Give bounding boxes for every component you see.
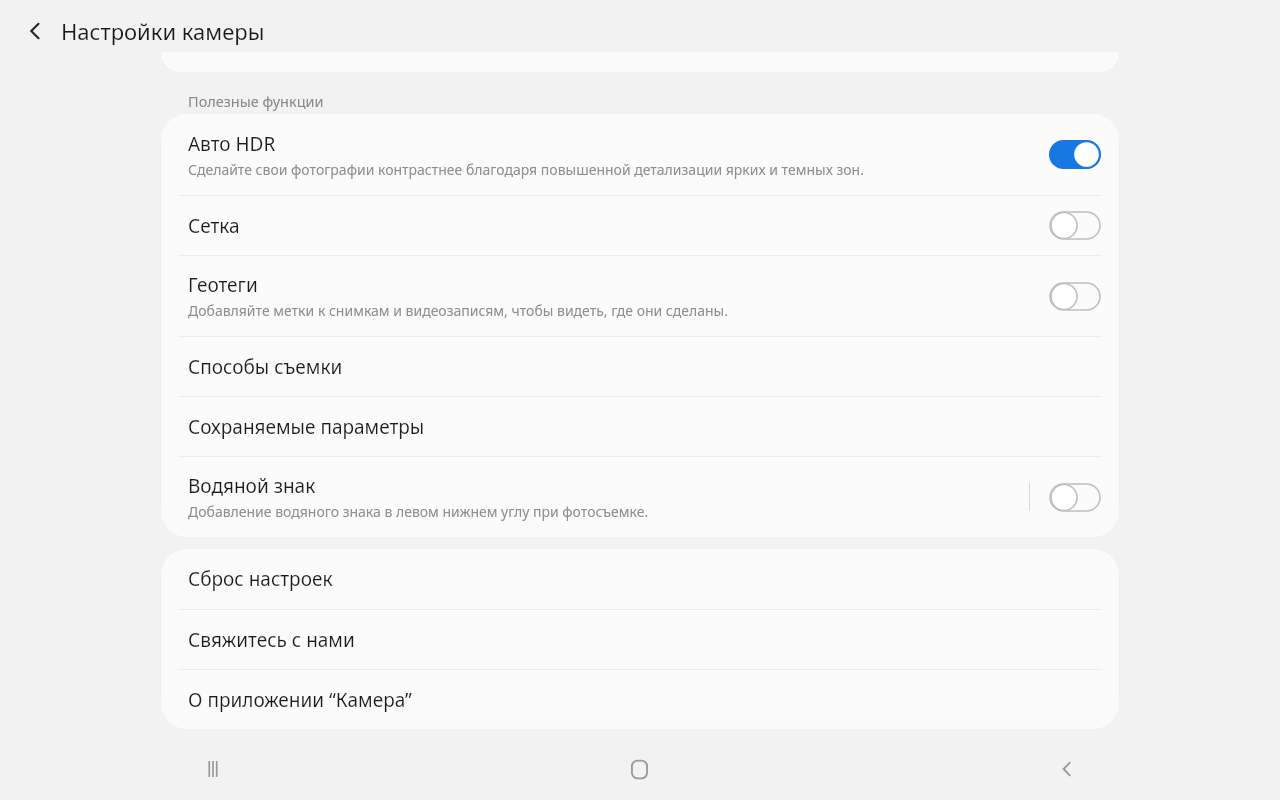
staticText: Способы съемки — [188, 354, 343, 380]
staticText: Сетка — [188, 213, 240, 239]
button[interactable] — [1049, 140, 1101, 169]
button[interactable]: О приложении “Камера” — [161, 670, 1119, 729]
button[interactable]: Авто HDR — [161, 114, 1119, 195]
button[interactable]: Back — [14, 10, 56, 52]
button[interactable]: Recent apps — [0, 738, 426, 800]
staticText: Полезные функции — [188, 91, 324, 111]
button[interactable]: Сброс настроек — [161, 549, 1119, 609]
staticText: Настройки камеры — [61, 16, 265, 46]
staticText: Сделайте свои фотографии контрастнее бла… — [188, 160, 864, 179]
button[interactable]: Способы съемки — [161, 337, 1119, 396]
button[interactable]: Свяжитесь с нами — [161, 610, 1119, 669]
staticText: Геотеги — [188, 272, 258, 298]
button[interactable] — [1049, 211, 1101, 240]
button[interactable] — [1049, 483, 1101, 512]
button[interactable]: Home — [426, 738, 853, 800]
button[interactable]: Водяной знак — [161, 457, 1119, 537]
button[interactable]: Сетка — [161, 196, 1119, 255]
staticText: Добавляйте метки к снимкам и видеозапися… — [188, 301, 728, 320]
button[interactable]: Геотеги — [161, 256, 1119, 336]
staticText: Свяжитесь с нами — [188, 627, 355, 653]
staticText: Авто HDR — [188, 131, 276, 157]
button[interactable]: Сохраняемые параметры — [161, 397, 1119, 456]
staticText: Добавление водяного знака в левом нижнем… — [188, 502, 649, 521]
staticText: Сброс настроек — [188, 566, 333, 592]
staticText: Водяной знак — [188, 473, 316, 499]
staticText: О приложении “Камера” — [188, 687, 412, 713]
staticText: Сохраняемые параметры — [188, 414, 425, 440]
button[interactable] — [1049, 282, 1101, 311]
